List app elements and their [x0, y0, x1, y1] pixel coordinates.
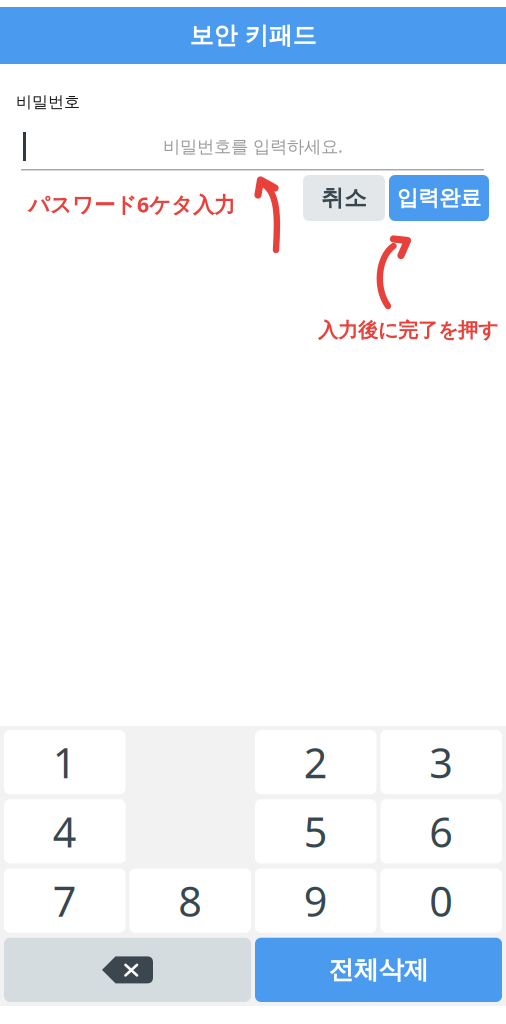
- staticText: 입력완료: [397, 185, 481, 211]
- button[interactable]: 전체삭제: [255, 938, 502, 1002]
- button[interactable]: 4: [4, 799, 125, 863]
- button[interactable]: 5: [255, 799, 376, 863]
- staticText: 비밀번호를 입력하세요.: [163, 134, 343, 157]
- staticText: 0: [429, 873, 453, 928]
- staticText: 보안 키패드: [189, 21, 316, 50]
- button[interactable]: 6: [380, 799, 502, 863]
- button[interactable]: 3: [380, 730, 502, 794]
- button[interactable]: 7: [4, 868, 125, 933]
- staticText: 4: [53, 804, 77, 859]
- button[interactable]: 0: [380, 868, 502, 933]
- staticText: 9: [304, 873, 328, 928]
- button[interactable]: 취소: [303, 175, 385, 221]
- staticText: 비밀번호: [16, 92, 80, 112]
- button[interactable]: 8: [129, 868, 251, 933]
- staticText: 3: [429, 735, 453, 790]
- staticText: 8: [178, 873, 202, 928]
- button[interactable]: 2: [255, 730, 376, 794]
- staticText: 1: [53, 735, 77, 790]
- staticText: 6: [429, 804, 453, 859]
- staticText: パスワード6ケタ入力: [28, 190, 235, 218]
- staticText: 5: [304, 804, 328, 859]
- staticText: 취소: [321, 184, 367, 212]
- staticText: 전체삭제: [328, 954, 428, 985]
- staticText: 7: [53, 873, 77, 928]
- staticText: 2: [304, 735, 328, 790]
- button[interactable]: 9: [255, 868, 376, 933]
- button[interactable]: Backspace: [4, 938, 251, 1002]
- staticText: 入力後に完了を押す: [318, 318, 498, 343]
- button[interactable]: 입력완료: [389, 175, 489, 221]
- button[interactable]: 1: [4, 730, 125, 794]
